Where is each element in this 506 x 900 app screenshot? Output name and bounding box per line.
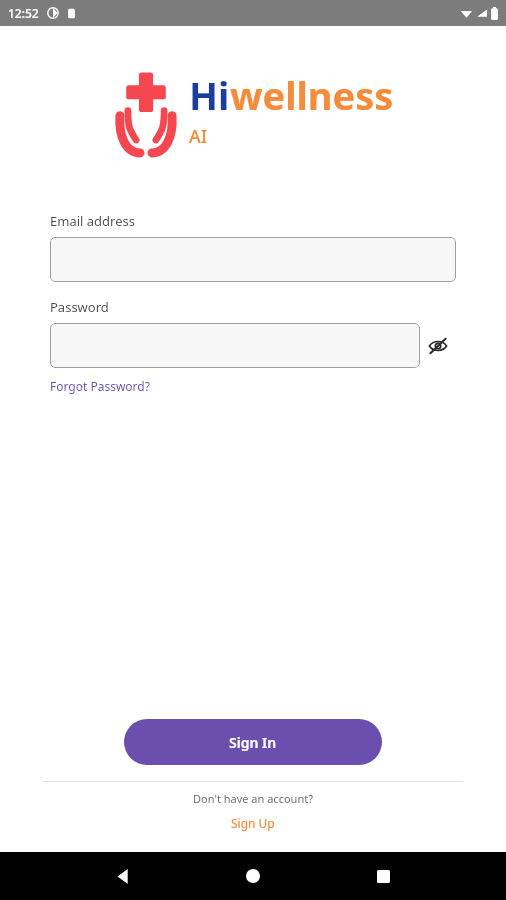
staticText: Hi bbox=[189, 69, 230, 121]
button[interactable]: Home bbox=[233, 856, 273, 896]
button[interactable]: Forgot Password? bbox=[50, 378, 150, 394]
staticText: AI bbox=[189, 124, 208, 149]
button[interactable]: Email address field bbox=[50, 237, 456, 282]
staticText: Password bbox=[50, 298, 109, 316]
staticText: Forgot Password? bbox=[50, 378, 150, 394]
staticText: Sign Up bbox=[231, 815, 275, 831]
staticText: 12:52 bbox=[8, 5, 39, 21]
button[interactable]: Sign In bbox=[124, 719, 382, 765]
staticText: Sign In bbox=[229, 733, 277, 752]
staticText: wellness bbox=[230, 69, 394, 121]
button[interactable]: Back bbox=[103, 856, 143, 896]
staticText: Don't have an account? bbox=[0, 791, 506, 806]
button[interactable]: Sign Up bbox=[225, 814, 281, 832]
button[interactable]: Recents bbox=[363, 856, 403, 896]
staticText: Email address bbox=[50, 212, 135, 230]
button[interactable]: Show password bbox=[420, 323, 456, 368]
button[interactable]: Password field bbox=[50, 323, 420, 368]
